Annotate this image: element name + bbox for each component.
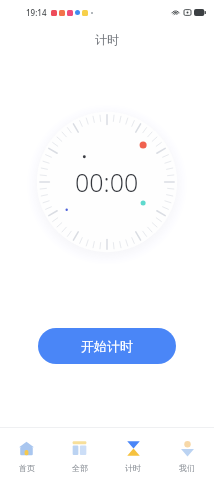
staticText: 开始计时 [81, 338, 133, 354]
button[interactable]: 全部 [53, 428, 106, 480]
staticText: 我们 [179, 463, 195, 473]
other: 我们 [178, 439, 197, 458]
staticText: 计时 [95, 32, 119, 47]
staticText: 19:14 [26, 7, 47, 18]
staticText: 全部 [72, 463, 88, 473]
button[interactable]: 开始计时 [38, 328, 176, 364]
button[interactable]: 首页 [0, 428, 53, 480]
other: 全部 [70, 439, 89, 458]
button[interactable]: 计时 [106, 428, 160, 480]
button[interactable]: 我们 [160, 428, 214, 480]
other: 首页 [17, 439, 36, 458]
staticText: 计时 [125, 463, 141, 473]
staticText: 00:00 [75, 165, 139, 199]
other: 计时 [124, 439, 143, 458]
staticText: 首页 [19, 463, 35, 473]
